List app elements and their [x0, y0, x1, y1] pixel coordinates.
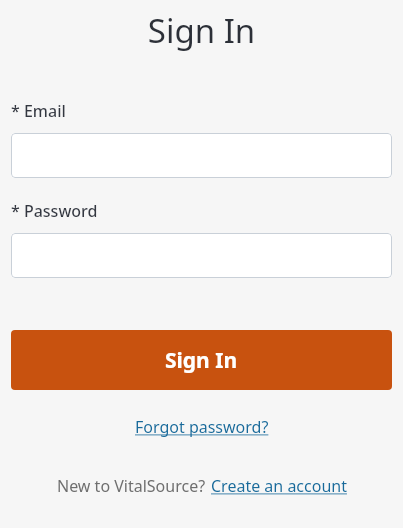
- staticText: * Email: [11, 100, 66, 122]
- button[interactable]: Forgot password?: [135, 416, 269, 438]
- staticText: Forgot password?: [135, 416, 269, 438]
- staticText: Sign In: [165, 346, 238, 375]
- staticText: * Password: [11, 200, 98, 222]
- staticText: Create an account: [211, 475, 347, 497]
- staticText: Sign In: [11, 8, 392, 53]
- button[interactable]: Create an account: [211, 475, 347, 497]
- button[interactable]: Email input field: [11, 133, 392, 178]
- button[interactable]: Sign In: [11, 330, 392, 390]
- staticText: New to VitalSource?: [57, 475, 206, 497]
- button[interactable]: Password input field: [11, 233, 392, 278]
